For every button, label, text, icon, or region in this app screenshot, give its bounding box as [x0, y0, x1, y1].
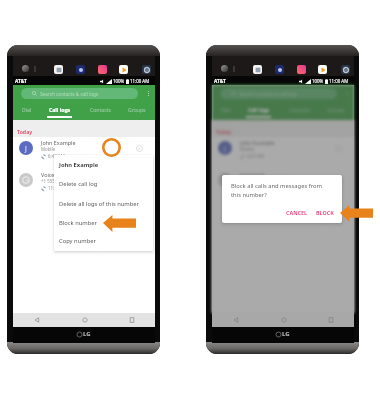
- button[interactable]: More options: [146, 88, 150, 99]
- staticText: Contacts: [289, 107, 310, 114]
- staticText: AT&T: [214, 78, 226, 85]
- button[interactable]: Search contacts & call logs: [220, 88, 337, 99]
- button[interactable]: Delete all logs of this number: [54, 194, 153, 214]
- staticText: Contacts: [90, 107, 111, 114]
- staticText: Today: [17, 128, 33, 135]
- button[interactable]: J: [212, 137, 354, 169]
- staticText: Search contacts & call logs: [40, 91, 99, 97]
- staticText: 11:00 AM: [130, 78, 150, 84]
- staticText: Delete all logs of this number: [59, 200, 140, 208]
- staticText: 11:41 AM: [247, 185, 267, 191]
- staticText: Voicemail: [240, 171, 265, 178]
- staticText: Mobile: [240, 146, 255, 152]
- button[interactable]: Delete call log: [54, 174, 153, 194]
- staticText: Delete call log: [59, 180, 98, 188]
- staticText: Voicemail: [41, 171, 66, 178]
- button[interactable]: Back: [212, 313, 260, 327]
- button[interactable]: Home: [61, 313, 108, 327]
- button[interactable]: Call logs: [42, 104, 77, 120]
- button[interactable]: Dial: [208, 104, 243, 120]
- staticText: Dial: [221, 107, 231, 114]
- button[interactable]: Contacts: [282, 104, 317, 120]
- staticText: this number?: [231, 191, 267, 199]
- staticText: BLOCK: [316, 209, 334, 216]
- staticText: John Example: [240, 139, 275, 146]
- button[interactable]: Dial: [9, 104, 44, 120]
- staticText: 11:00 AM: [329, 78, 349, 84]
- staticText: 11:41 AM: [48, 185, 68, 191]
- staticText: Call logs: [248, 107, 270, 114]
- staticText: Call logs: [49, 107, 71, 114]
- staticText: Block all calls and messages from: [231, 182, 322, 190]
- staticText: Today: [216, 128, 232, 135]
- button[interactable]: Voicemail: [212, 169, 354, 201]
- button[interactable]: CANCEL: [283, 207, 310, 218]
- staticText: Dial: [22, 107, 32, 114]
- staticText: 6:47 AM: [48, 153, 65, 159]
- staticText: John Example: [59, 161, 99, 169]
- button[interactable]: Contacts: [83, 104, 118, 120]
- button[interactable]: Copy number: [54, 231, 153, 251]
- button[interactable]: Call logs: [241, 104, 276, 120]
- staticText: LG: [282, 330, 290, 338]
- button[interactable]: Back: [13, 313, 61, 327]
- staticText: Groups: [327, 107, 345, 114]
- staticText: 6:47 AM: [247, 153, 264, 159]
- button[interactable]: BLOCK: [313, 207, 337, 218]
- staticText: J: [25, 144, 27, 153]
- staticText: AT&T: [15, 78, 27, 85]
- staticText: Copy number: [59, 237, 96, 245]
- button[interactable]: J: [13, 137, 155, 169]
- button[interactable]: Recents: [108, 313, 155, 327]
- staticText: 100%: [312, 78, 324, 84]
- staticText: J: [224, 144, 226, 153]
- staticText: CANCEL: [286, 209, 308, 216]
- button[interactable]: Recents: [307, 313, 354, 327]
- staticText: Groups: [128, 107, 146, 114]
- button[interactable]: Block number: [54, 213, 153, 233]
- button[interactable]: Voicemail: [13, 169, 155, 201]
- staticText: Mobile: [41, 146, 56, 152]
- staticText: 100%: [113, 78, 125, 84]
- button[interactable]: Groups: [318, 104, 353, 120]
- staticText: +1 555 123 4567: [41, 178, 75, 184]
- button[interactable]: Search contacts & call logs: [21, 88, 138, 99]
- staticText: Search contacts & call logs: [239, 91, 298, 97]
- button[interactable]: John Example: [54, 155, 153, 175]
- staticText: John Example: [41, 139, 76, 146]
- staticText: LG: [83, 330, 91, 338]
- button[interactable]: Groups: [119, 104, 154, 120]
- staticText: Block number: [59, 219, 97, 227]
